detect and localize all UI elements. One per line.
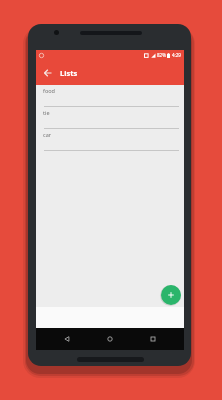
button[interactable]: car (36, 129, 184, 151)
button[interactable] (161, 285, 181, 305)
button[interactable] (36, 61, 60, 85)
button[interactable] (100, 329, 120, 349)
staticText: 4:29 (172, 52, 181, 58)
staticText: Lists (60, 68, 78, 78)
staticText: car (43, 131, 51, 138)
button[interactable] (143, 329, 163, 349)
staticText: 82% (157, 52, 166, 58)
staticText: food (43, 87, 55, 94)
button[interactable]: tie (36, 107, 184, 129)
button[interactable] (57, 329, 77, 349)
button[interactable]: food (36, 85, 184, 107)
staticText: tie (43, 109, 50, 116)
